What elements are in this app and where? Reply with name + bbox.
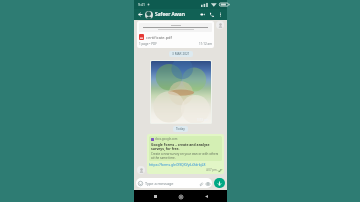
button[interactable]: Attach [198, 181, 203, 186]
staticText: 1 page • PDF [139, 42, 157, 46]
button[interactable]: Photo [150, 60, 212, 124]
staticText: docs.google.com [155, 137, 178, 141]
staticText: https://forms.gle/X9QXVyiLtXdrbjL8 [149, 162, 206, 167]
staticText: 9:41 [138, 2, 145, 7]
button[interactable]: Scroll to bottom [214, 178, 225, 188]
button[interactable]: More options [217, 11, 224, 18]
button[interactable]: Type a message [136, 178, 212, 188]
staticText: 11:12 am [199, 42, 212, 46]
button[interactable]: Voice call [208, 11, 215, 18]
staticText: Safeer Awan [155, 11, 185, 18]
button[interactable]: Sender avatar [216, 21, 224, 29]
button[interactable]: Recents [151, 192, 160, 201]
staticText: 4:07 pm [206, 168, 217, 172]
staticText: 3 MAR 2021 [172, 52, 190, 56]
button[interactable]: docs.google.com [147, 134, 224, 174]
button[interactable]: Camera [205, 181, 210, 186]
button[interactable]: Back [137, 11, 144, 18]
button[interactable]: Video call [199, 11, 206, 18]
staticText: Today [176, 127, 185, 131]
staticText: Type a message [145, 181, 174, 186]
button[interactable]: Contact photo [145, 11, 153, 19]
button[interactable]: Home [176, 192, 185, 201]
staticText: Google Forms – create and analyse survey… [151, 142, 220, 151]
button[interactable]: Back [202, 192, 211, 201]
button[interactable]: certificate.pdf [137, 21, 214, 48]
staticText: Create a new survey on your own or with … [151, 152, 220, 160]
staticText: 1:13 pm [197, 118, 209, 122]
staticText: certificate.pdf [146, 35, 172, 40]
button[interactable]: Sender avatar [137, 166, 145, 174]
